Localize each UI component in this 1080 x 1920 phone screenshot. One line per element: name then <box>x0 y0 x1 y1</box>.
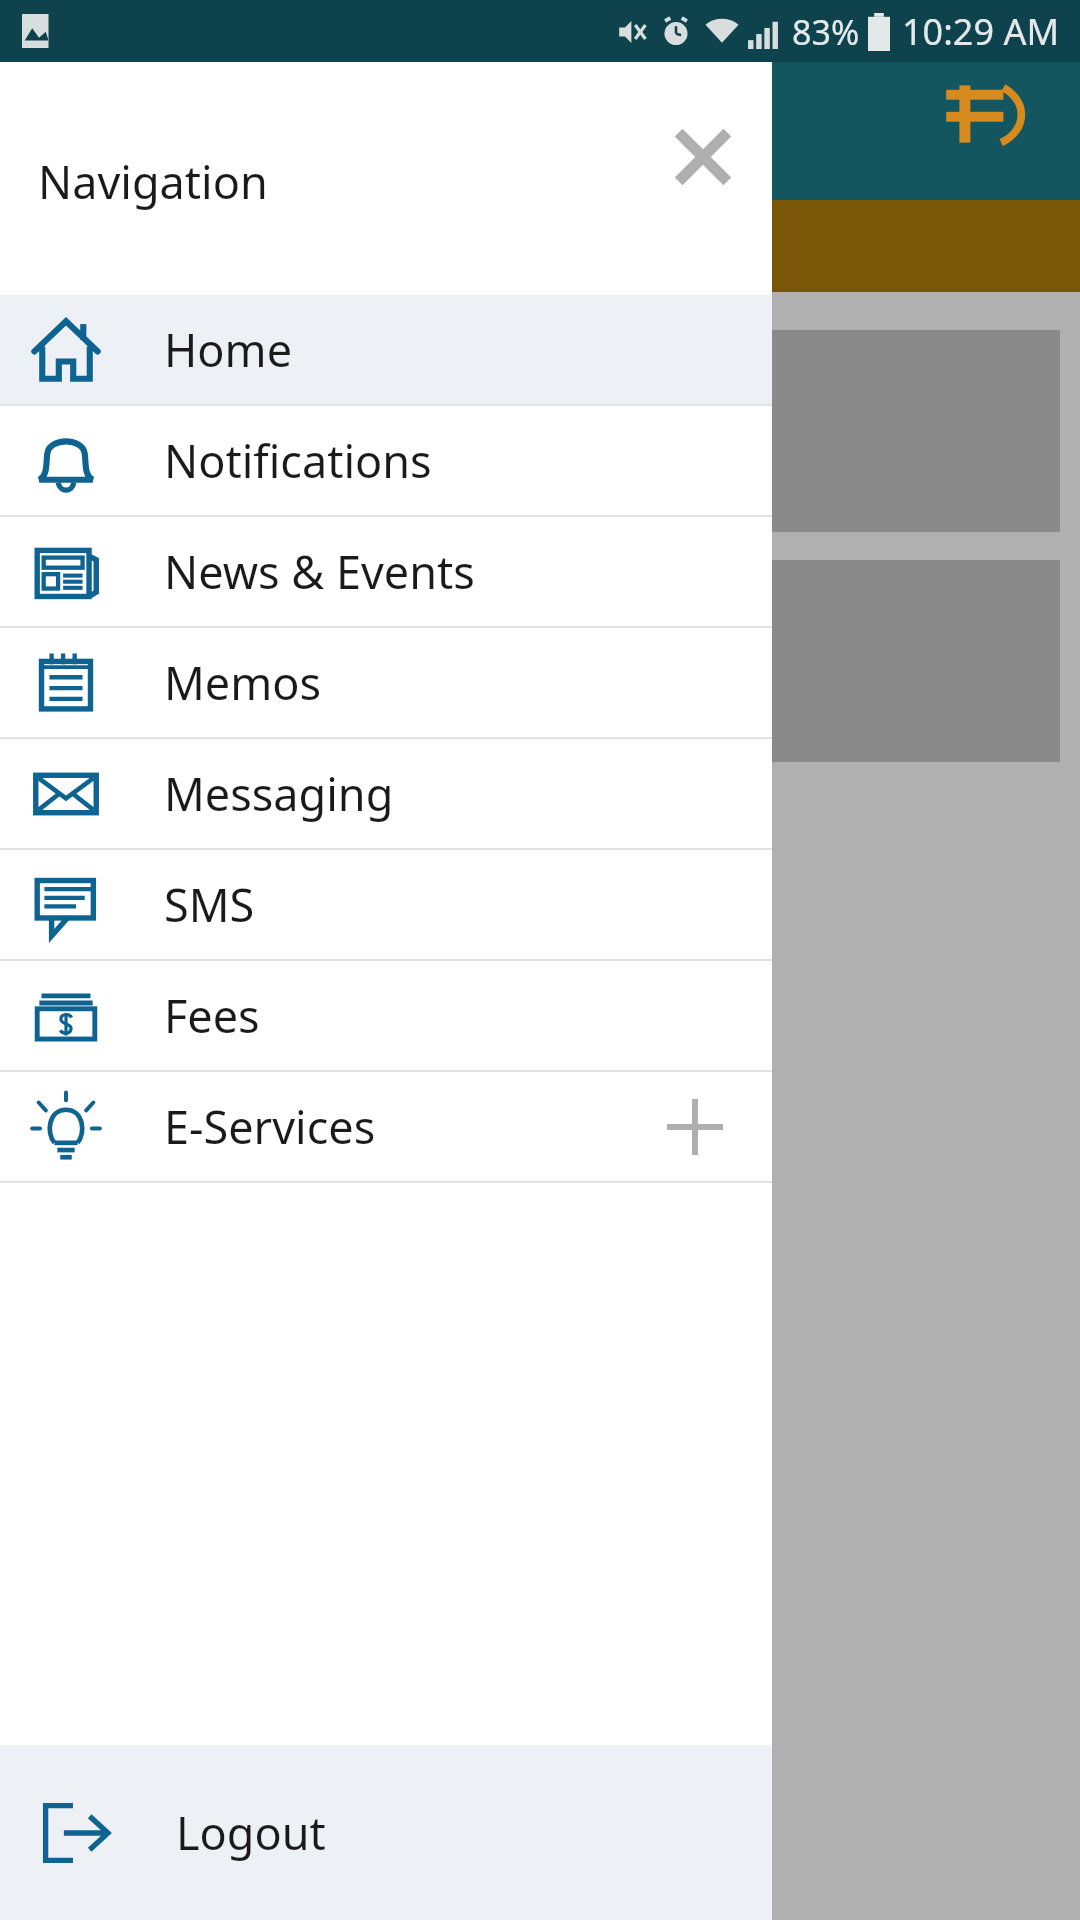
staticText: Messaging <box>164 763 394 824</box>
staticText: E-Services <box>164 1096 376 1157</box>
button[interactable]: News & Events <box>0 517 772 626</box>
staticText: Memos <box>164 652 322 713</box>
staticText: Notifications <box>164 430 432 491</box>
staticText: 83% <box>792 9 860 55</box>
staticText: 10:29 AM <box>902 7 1060 56</box>
button[interactable]: Messaging <box>0 739 772 848</box>
button[interactable]: E-Services <box>0 1072 772 1181</box>
button[interactable]: SMS <box>0 850 772 959</box>
staticText: SMS <box>164 874 255 935</box>
button[interactable]: Memos <box>0 628 772 737</box>
button[interactable]: Logout <box>0 1745 772 1920</box>
staticText: Home <box>164 319 293 380</box>
button[interactable]: Close navigation <box>655 109 751 205</box>
button[interactable]: Notifications <box>0 406 772 515</box>
staticText: News & Events <box>164 541 475 602</box>
button[interactable]: Expand E-Services <box>658 1090 732 1164</box>
button[interactable]: Fees <box>0 961 772 1070</box>
button[interactable]: Home <box>0 295 772 404</box>
staticText: Navigation <box>38 151 268 212</box>
staticText: Fees <box>164 985 260 1046</box>
staticText: Logout <box>176 1802 326 1863</box>
